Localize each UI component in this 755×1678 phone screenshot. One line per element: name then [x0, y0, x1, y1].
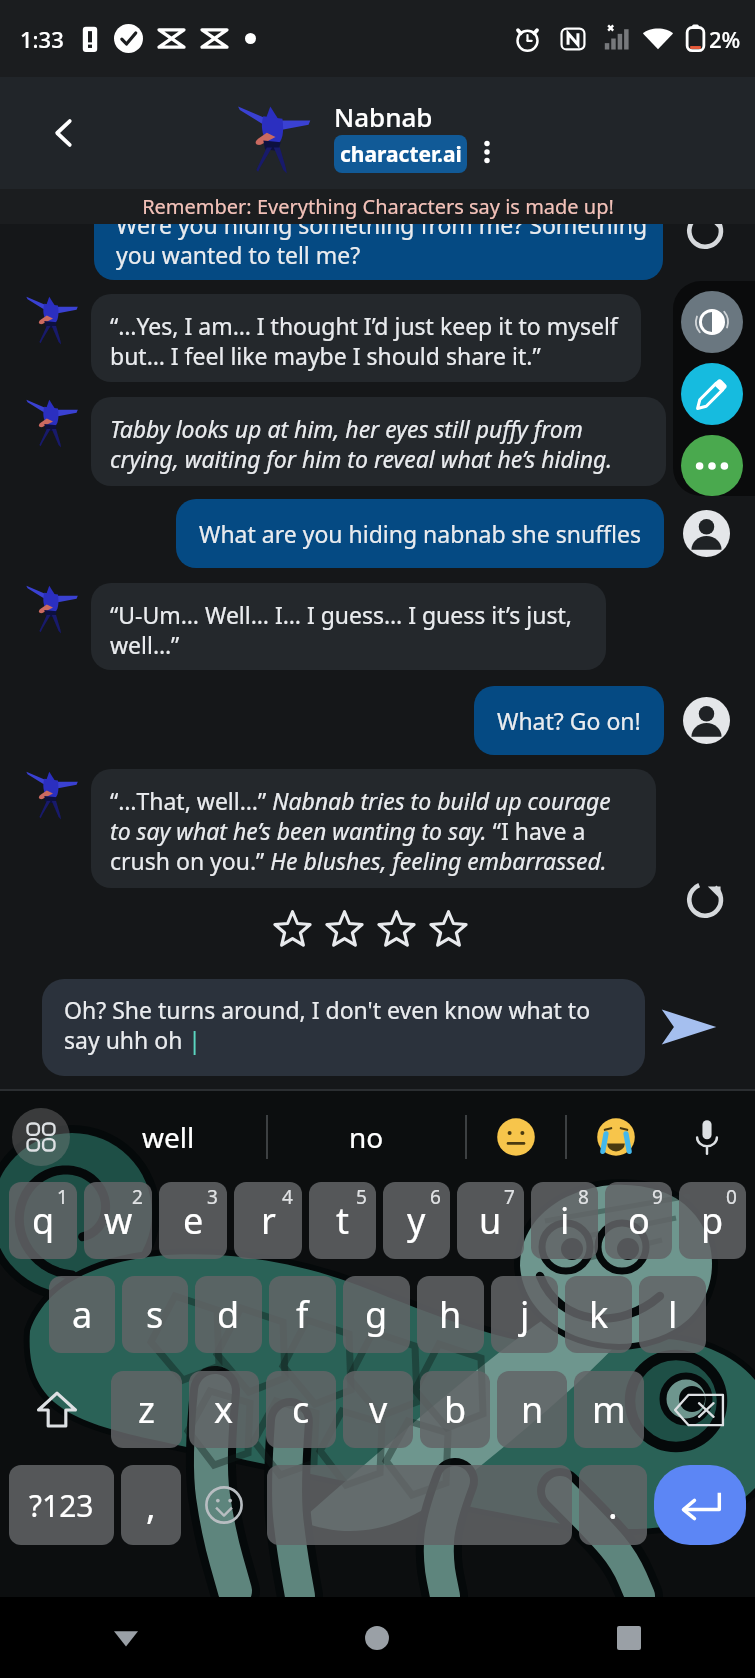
button[interactable]: “…Yes, I am… I thought I’d just keep it … [91, 294, 641, 382]
staticText: . [608, 1481, 618, 1530]
button[interactable]: m [574, 1371, 644, 1448]
staticText: 7 [504, 1184, 515, 1210]
staticText: a [72, 1290, 93, 1339]
button[interactable]: Rate response [422, 903, 474, 955]
button[interactable]: Space [267, 1465, 572, 1545]
staticText: What? Go on! [497, 705, 641, 736]
button[interactable]: f [269, 1276, 336, 1353]
staticText: 3 [207, 1184, 218, 1210]
staticText: ?123 [29, 1485, 94, 1526]
staticText: o [628, 1196, 650, 1245]
button[interactable]: “U-Um… Well… I… I guess… I guess it’s ju… [91, 583, 606, 670]
staticText: r [261, 1196, 276, 1245]
button[interactable]: Enter [654, 1465, 746, 1545]
button[interactable]: v [343, 1371, 413, 1448]
staticText: Were you hiding something from me? Somet… [116, 209, 648, 270]
button[interactable]: h [417, 1276, 484, 1353]
button[interactable]: Rate response [266, 903, 318, 955]
button[interactable]: k [565, 1276, 632, 1353]
button[interactable]: Back [36, 105, 92, 161]
button[interactable]: z [111, 1371, 182, 1448]
button[interactable]: r [234, 1182, 302, 1259]
button[interactable]: u [457, 1182, 524, 1259]
button[interactable]: Oh? She turns around, I don't even know … [42, 979, 645, 1076]
button[interactable]: l [639, 1276, 706, 1353]
button[interactable]: Rate response [370, 903, 422, 955]
staticText: d [217, 1290, 240, 1339]
staticText: j [520, 1290, 530, 1339]
button[interactable]: Voice input [665, 1091, 749, 1182]
button[interactable]: Emoji [188, 1465, 260, 1545]
button[interactable]: Toolbar [12, 1108, 70, 1166]
button[interactable]: Color picker [681, 363, 743, 425]
staticText: 5 [356, 1184, 367, 1210]
staticText: c [292, 1385, 310, 1434]
staticText: b [444, 1385, 467, 1434]
staticText: h [439, 1290, 462, 1339]
button[interactable]: p [679, 1182, 746, 1259]
button[interactable]: . [579, 1465, 647, 1545]
button[interactable]: w [84, 1182, 152, 1259]
button[interactable]: i [531, 1182, 598, 1259]
staticText: f [296, 1290, 309, 1339]
button[interactable]: b [420, 1371, 490, 1448]
button[interactable]: Were you hiding something from me? Somet… [94, 193, 663, 280]
button[interactable]: Regenerate [678, 202, 734, 258]
staticText: character.ai [340, 140, 462, 169]
staticText: Tabby looks up at him, her eyes still pu… [110, 413, 647, 474]
staticText: 4 [282, 1184, 293, 1210]
button[interactable]: Rate response [318, 903, 370, 955]
staticText: t [336, 1196, 349, 1245]
staticText: k [589, 1290, 609, 1339]
button[interactable]: Neutral face emoji [467, 1091, 565, 1182]
staticText: well [142, 1118, 195, 1156]
button[interactable]: g [343, 1276, 410, 1353]
button[interactable]: Regenerate response [678, 871, 734, 927]
button[interactable]: c [266, 1371, 336, 1448]
staticText: What are you hiding nabnab she snuffles [199, 518, 641, 549]
button[interactable]: “…That, well…” Nabnab tries to build up … [91, 769, 656, 888]
button[interactable]: character.ai [334, 135, 467, 173]
staticText: i [560, 1196, 570, 1245]
button[interactable]: Send [652, 990, 726, 1064]
staticText: 2 [132, 1184, 143, 1210]
button[interactable]: ?123 [9, 1465, 114, 1545]
button[interactable]: j [491, 1276, 558, 1353]
button[interactable]: e [159, 1182, 227, 1259]
button[interactable]: no [268, 1091, 465, 1182]
button[interactable]: What are you hiding nabnab she snuffles [176, 499, 664, 568]
staticText: Oh? She turns around, I don't even know … [64, 994, 627, 1055]
button[interactable]: s [122, 1276, 188, 1353]
staticText: l [668, 1290, 678, 1339]
button[interactable]: t [309, 1182, 376, 1259]
button[interactable]: Contrast [681, 291, 743, 353]
button[interactable]: , [121, 1465, 181, 1545]
button[interactable]: n [497, 1371, 567, 1448]
staticText: “U-Um… Well… I… I guess… I guess it’s ju… [110, 599, 587, 660]
staticText: s [146, 1290, 164, 1339]
staticText: p [701, 1196, 724, 1245]
button[interactable]: Back [0, 1597, 251, 1678]
button[interactable]: More options [464, 129, 510, 175]
staticText: “…Yes, I am… I thought I’d just keep it … [110, 310, 622, 371]
staticText: x [214, 1385, 234, 1434]
button[interactable]: Loudly crying emoji [567, 1091, 665, 1182]
button[interactable]: Backspace [651, 1371, 746, 1448]
button[interactable]: q [9, 1182, 77, 1259]
button[interactable]: x [189, 1371, 259, 1448]
button[interactable]: Home [251, 1597, 503, 1678]
button[interactable]: o [605, 1182, 672, 1259]
staticText: g [365, 1290, 388, 1339]
button[interactable]: Shift [9, 1371, 104, 1448]
button[interactable]: Recent apps [503, 1597, 755, 1678]
button[interactable]: What? Go on! [474, 686, 664, 755]
button[interactable]: y [383, 1182, 450, 1259]
button[interactable]: More actions [681, 435, 743, 496]
button[interactable]: well [70, 1091, 266, 1182]
staticText: “…That, well…” Nabnab tries to build up … [110, 785, 637, 876]
button[interactable]: a [49, 1276, 115, 1353]
button[interactable]: Tabby looks up at him, her eyes still pu… [91, 397, 666, 486]
staticText: no [349, 1118, 384, 1156]
staticText: 6 [430, 1184, 441, 1210]
button[interactable]: d [195, 1276, 262, 1353]
